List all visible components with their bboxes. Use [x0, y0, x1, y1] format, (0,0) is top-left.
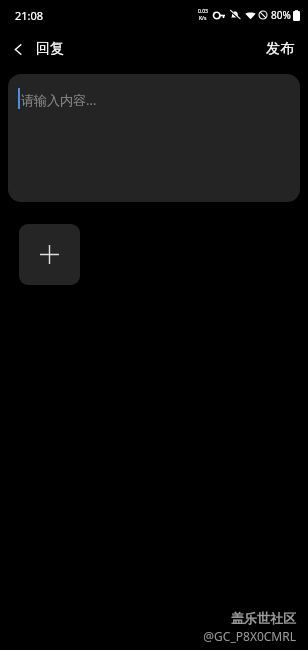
staticText: 80% [271, 8, 291, 22]
button[interactable]: 发布 [252, 34, 308, 64]
button[interactable]: Add image [19, 224, 80, 285]
other: Back [12, 43, 25, 56]
staticText: 请输入内容... [21, 91, 97, 109]
staticText: 发布 [266, 40, 294, 58]
button[interactable]: 请输入内容... [8, 74, 300, 202]
staticText: 21:08 [15, 8, 44, 23]
staticText: @GC_P8X0CMRL [203, 628, 296, 644]
staticText: 盖乐世社区 [231, 610, 296, 626]
staticText: 回复 [36, 40, 64, 58]
staticText: K/s [199, 15, 207, 22]
staticText: 0.03 [198, 8, 208, 15]
button[interactable]: Back [0, 34, 74, 64]
